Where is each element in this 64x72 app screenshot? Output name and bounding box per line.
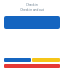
staticText: Check in (0, 3, 64, 7)
staticText: Check in and out (0, 8, 64, 12)
